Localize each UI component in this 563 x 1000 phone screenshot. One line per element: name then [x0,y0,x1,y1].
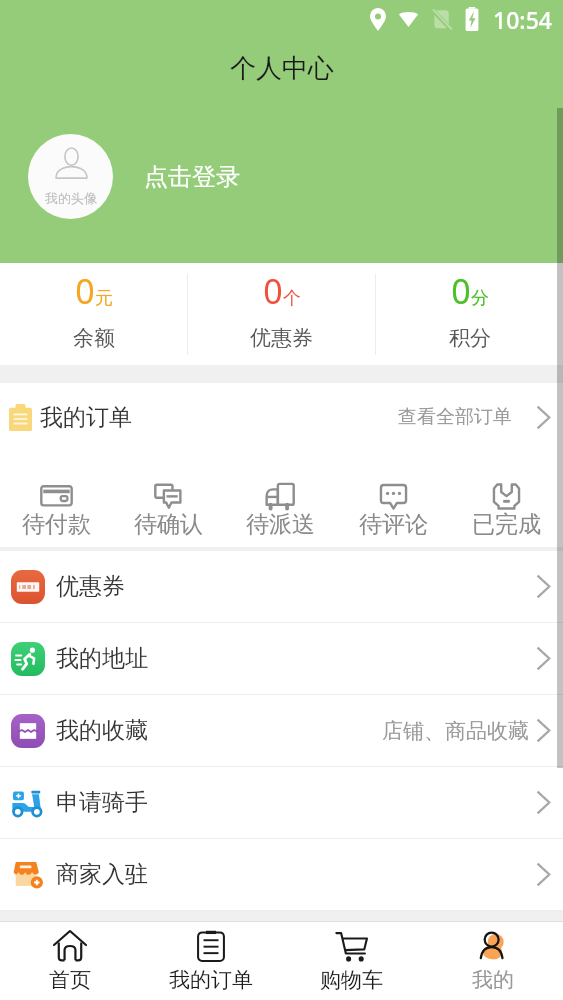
staticText: 待评论 [359,510,428,539]
button[interactable]: 待确认 [112,451,224,547]
staticText: 已完成 [472,510,541,539]
staticText: 优惠券 [250,325,313,351]
staticText: 待付款 [22,510,91,539]
staticText: 0 [263,268,283,314]
staticText: 积分 [449,325,491,351]
button[interactable]: 我的地址 [0,623,563,694]
staticText: 商家入驻 [56,860,148,889]
staticText: 10:54 [493,4,552,35]
staticText: 我的订单 [169,967,253,993]
staticText: 0 [451,268,471,314]
button[interactable]: 我的收藏 [0,695,563,766]
button[interactable]: 首页 [0,921,140,1000]
staticText: 我的头像 [45,190,97,206]
button[interactable]: 我的头像 [28,134,113,219]
staticText: 店铺、商品收藏 [382,718,529,744]
staticText: 优惠券 [56,572,125,601]
staticText: 我的订单 [40,403,132,432]
button[interactable]: 优惠券 [0,551,563,622]
button[interactable]: 待评论 [337,451,450,547]
button[interactable]: 购物车 [281,921,422,1000]
staticText: 首页 [49,967,91,993]
staticText: 余额 [73,325,115,351]
staticText: 分 [471,287,489,310]
staticText: 待派送 [246,510,315,539]
staticText: 0 [75,268,95,314]
staticText: 元 [95,287,113,310]
button[interactable]: 待派送 [224,451,337,547]
button[interactable]: 待付款 [0,451,112,547]
staticText: 我的地址 [56,644,148,673]
button[interactable]: 我的 [422,921,563,1000]
staticText: 我的 [472,967,514,993]
button[interactable]: 商家入驻 [0,839,563,910]
staticText: 我的收藏 [56,716,148,745]
staticText: 点击登录 [144,162,240,192]
button[interactable]: 0 [376,263,563,365]
staticText: 申请骑手 [56,788,148,817]
button[interactable]: 我的订单 [0,383,563,451]
staticText: 个人中心 [230,52,334,85]
staticText: 个 [283,287,301,310]
staticText: 待确认 [134,510,203,539]
staticText: 购物车 [320,967,383,993]
button[interactable]: 0 [0,263,187,365]
button[interactable]: 已完成 [450,451,563,547]
button[interactable]: 0 [188,263,375,365]
staticText: 查看全部订单 [398,405,512,429]
button[interactable]: 申请骑手 [0,767,563,838]
button[interactable]: 我的订单 [140,921,281,1000]
